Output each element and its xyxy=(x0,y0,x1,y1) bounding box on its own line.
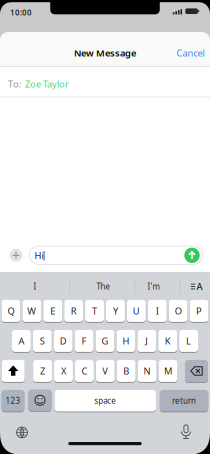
staticText: 123 xyxy=(5,395,20,406)
staticText: K xyxy=(165,335,171,347)
staticText: J xyxy=(145,335,148,347)
button[interactable]: U xyxy=(127,300,146,323)
button[interactable]: I xyxy=(148,300,167,323)
button[interactable] xyxy=(15,425,29,439)
button[interactable]: T xyxy=(85,300,104,323)
staticText: I xyxy=(33,281,36,292)
button[interactable]: Y xyxy=(106,300,125,323)
button[interactable]: Cancel xyxy=(0,47,210,59)
staticText: S xyxy=(40,335,45,347)
button[interactable]: W xyxy=(22,300,41,323)
button[interactable] xyxy=(2,360,25,383)
button[interactable]: G xyxy=(95,330,114,353)
staticText: Y xyxy=(113,305,118,317)
staticText: P xyxy=(196,305,202,317)
staticText: R xyxy=(71,305,77,317)
staticText: C xyxy=(81,365,87,377)
button[interactable] xyxy=(29,389,51,412)
button[interactable]: C xyxy=(75,360,94,383)
button[interactable]: J xyxy=(137,330,156,353)
button[interactable] xyxy=(184,248,200,263)
staticText: space xyxy=(94,395,116,406)
staticText: return xyxy=(172,395,196,406)
staticText: F xyxy=(82,335,87,347)
button[interactable] xyxy=(9,249,22,262)
button[interactable]: H xyxy=(116,330,135,353)
button[interactable]: I'm xyxy=(134,274,172,298)
button[interactable]: V xyxy=(96,360,115,383)
staticText: New Message xyxy=(74,47,136,59)
button[interactable]: B xyxy=(117,360,136,383)
button[interactable]: return xyxy=(160,390,208,412)
staticText: L xyxy=(186,335,191,347)
staticText: Zoe Taylor xyxy=(25,78,69,90)
button[interactable] xyxy=(179,424,193,439)
button[interactable]: Z xyxy=(33,360,52,383)
staticText: T xyxy=(92,305,97,317)
button[interactable]: 123 xyxy=(2,390,24,412)
staticText: U xyxy=(133,305,140,317)
button[interactable]: L xyxy=(179,330,198,353)
button[interactable]: I xyxy=(5,274,65,298)
button[interactable]: X xyxy=(54,360,73,383)
staticText: The xyxy=(96,281,110,292)
button[interactable]: Q xyxy=(1,300,20,323)
button[interactable]: To: xyxy=(0,78,210,90)
staticText: A xyxy=(196,280,202,293)
staticText: M xyxy=(164,365,172,377)
button[interactable]: A xyxy=(12,330,31,353)
staticText: Cancel xyxy=(176,47,204,59)
staticText: D xyxy=(60,335,67,347)
staticText: H xyxy=(122,335,129,347)
button[interactable]: D xyxy=(54,330,73,353)
staticText: Hi xyxy=(34,249,43,261)
button[interactable]: space xyxy=(54,390,156,412)
staticText: W xyxy=(27,305,36,317)
staticText: E xyxy=(50,305,55,317)
button[interactable]: P xyxy=(190,300,208,323)
button[interactable]: A xyxy=(183,274,209,298)
button[interactable]: R xyxy=(64,300,83,323)
staticText: Q xyxy=(7,305,14,317)
button[interactable]: O xyxy=(169,300,188,323)
staticText: O xyxy=(175,305,182,317)
button[interactable]: N xyxy=(138,360,157,383)
button[interactable]: The xyxy=(75,274,131,298)
button[interactable]: M xyxy=(159,360,177,383)
staticText: 10:00 xyxy=(10,7,32,18)
staticText: Z xyxy=(40,365,45,377)
button[interactable] xyxy=(185,360,208,383)
staticText: To: xyxy=(8,78,22,90)
staticText: G xyxy=(101,335,108,347)
staticText: N xyxy=(144,365,151,377)
staticText: A xyxy=(18,335,24,347)
button[interactable]: S xyxy=(33,330,52,353)
staticText: I'm xyxy=(147,281,159,292)
button[interactable]: E xyxy=(43,300,62,323)
button[interactable]: F xyxy=(75,330,93,353)
staticText: X xyxy=(61,365,66,377)
button[interactable]: K xyxy=(158,330,177,353)
staticText: B xyxy=(123,365,129,377)
staticText: V xyxy=(102,365,108,377)
staticText: I xyxy=(156,305,159,317)
